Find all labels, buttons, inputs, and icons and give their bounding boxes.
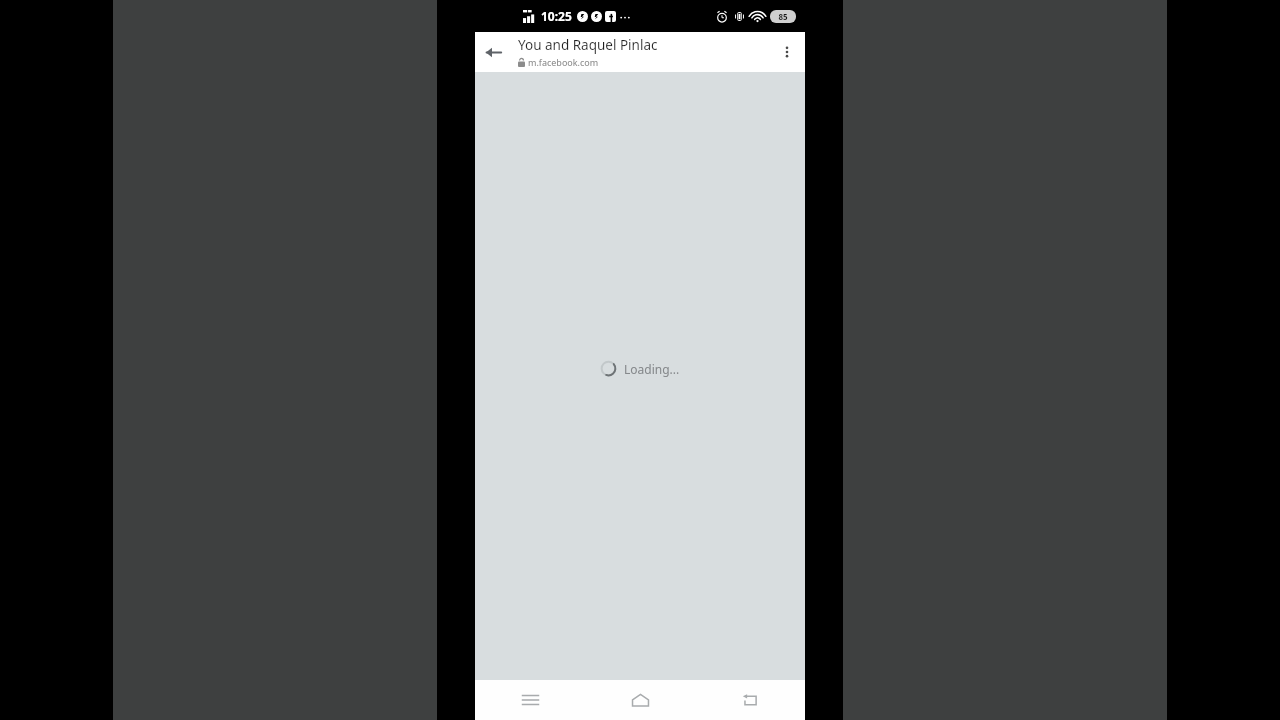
button[interactable]: More options [769,34,805,70]
button[interactable]: Home [585,680,695,720]
staticText: 10:25 [541,8,572,24]
staticText: m.facebook.com [528,56,599,68]
button[interactable]: Back [695,680,805,720]
staticText: Loading... [624,361,680,377]
button[interactable]: You and Raquel Pinlac [518,36,748,68]
button[interactable]: Recent apps [475,680,585,720]
staticText: You and Raquel Pinlac [518,36,658,54]
staticText: 85 [778,11,788,22]
button[interactable]: Back [475,34,511,70]
